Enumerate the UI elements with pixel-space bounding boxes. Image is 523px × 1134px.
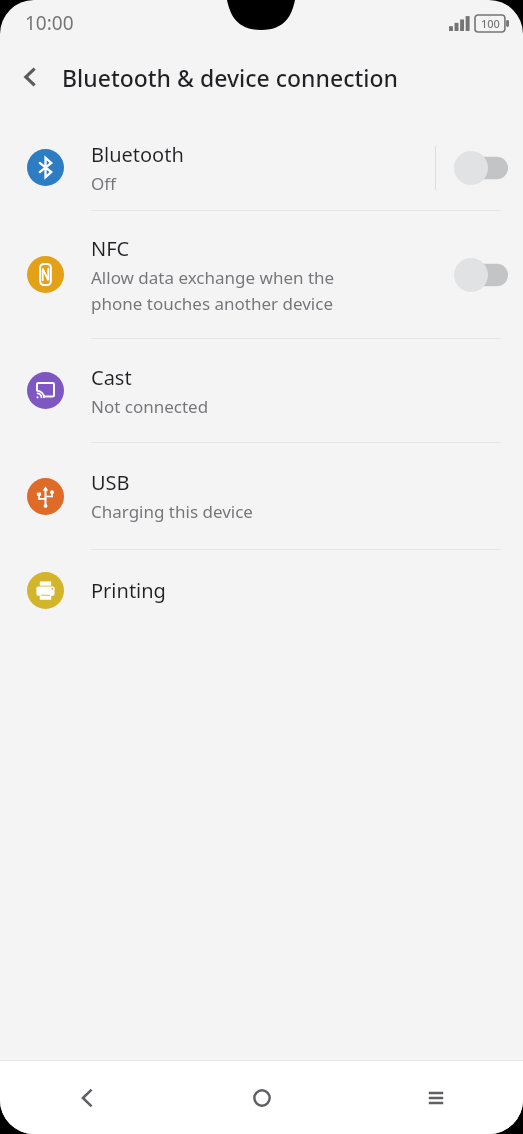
button[interactable]: Home: [175, 1061, 349, 1134]
button[interactable]: Recent apps: [349, 1061, 523, 1134]
staticText: Charging this device: [91, 500, 253, 523]
staticText: Off: [91, 172, 116, 195]
staticText: Cast: [91, 364, 132, 391]
staticText: Allow data exchange when the phone touch…: [91, 266, 335, 315]
staticText: 10:00: [25, 10, 74, 36]
button[interactable]: USB: [0, 443, 523, 549]
button[interactable]: Cast: [0, 339, 523, 442]
staticText: USB: [91, 469, 130, 496]
button[interactable]: Back: [0, 46, 62, 108]
staticText: Bluetooth & device connection: [62, 62, 398, 93]
button[interactable]: Toggle: [454, 258, 508, 292]
staticText: NFC: [91, 235, 130, 262]
staticText: 100: [481, 16, 500, 31]
button[interactable]: Bluetooth: [0, 125, 523, 210]
staticText: Bluetooth: [91, 141, 184, 168]
button[interactable]: Printing: [0, 550, 523, 630]
button[interactable]: Back: [0, 1061, 175, 1134]
staticText: Printing: [91, 577, 166, 604]
button[interactable]: Toggle: [454, 151, 508, 185]
button[interactable]: NFC: [0, 211, 523, 338]
staticText: Not connected: [91, 395, 209, 418]
